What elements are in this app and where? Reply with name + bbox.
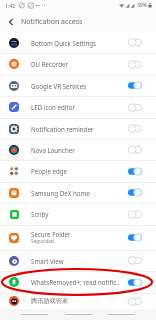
button[interactable]: On xyxy=(128,233,142,242)
button[interactable]: Off xyxy=(128,124,142,133)
button[interactable]: Back xyxy=(108,309,135,320)
staticText: Bottom Quick Settings xyxy=(31,39,97,47)
button[interactable]: On xyxy=(128,188,142,197)
staticText: Secure Folder xyxy=(31,230,71,238)
button[interactable]: Google VR Services xyxy=(0,75,156,96)
button[interactable]: Off xyxy=(128,145,142,154)
staticText: Seguridad xyxy=(31,238,55,245)
staticText: 39% xyxy=(137,2,147,9)
button[interactable]: Bottom Quick Settings xyxy=(0,32,156,53)
button[interactable]: Nova Launcher xyxy=(0,139,156,160)
staticText: Google VR Services xyxy=(31,82,87,90)
staticText: Smart View xyxy=(31,257,64,265)
button[interactable]: 腾讯游戏管家 xyxy=(0,293,156,309)
button[interactable]: People edge xyxy=(0,160,156,182)
button[interactable]: Off xyxy=(128,297,142,306)
staticText: Nova Launcher xyxy=(31,146,75,154)
staticText: WhatsRemoved+: read notific.. xyxy=(31,278,120,286)
button[interactable]: Home xyxy=(65,309,92,320)
button[interactable]: Samsung DeX home xyxy=(0,182,156,203)
button[interactable]: Off xyxy=(128,256,142,265)
staticText: LED icon editor xyxy=(31,103,75,111)
button[interactable]: DU Recorder xyxy=(0,53,156,75)
button[interactable]: Off xyxy=(128,60,142,69)
staticText: Notification reminder xyxy=(31,125,94,133)
button[interactable]: Secure Folder xyxy=(0,225,156,250)
button[interactable]: Off xyxy=(128,103,142,112)
staticText: Notification access xyxy=(21,17,83,27)
button[interactable]: Off xyxy=(128,210,142,219)
button[interactable]: LED icon editor xyxy=(0,96,156,118)
staticText: DU Recorder xyxy=(31,60,68,68)
button[interactable]: On xyxy=(128,81,142,90)
staticText: Samsung DeX home xyxy=(31,189,90,197)
button[interactable]: Navigate up xyxy=(0,11,21,32)
button[interactable]: WhatsRemoved+: read notific.. xyxy=(0,271,156,293)
button[interactable]: Smart View xyxy=(0,250,156,271)
staticText: 腾讯游戏管家 xyxy=(31,297,69,305)
button[interactable]: On xyxy=(128,278,142,287)
staticText: People edge xyxy=(31,167,68,175)
button[interactable]: On xyxy=(128,167,142,176)
button[interactable]: Scriby xyxy=(0,203,156,225)
button[interactable]: Off xyxy=(128,38,142,47)
button[interactable]: Notification reminder xyxy=(0,118,156,139)
staticText: 1:42 xyxy=(5,2,16,9)
button[interactable]: Recents xyxy=(21,309,48,320)
staticText: Scriby xyxy=(31,210,49,218)
